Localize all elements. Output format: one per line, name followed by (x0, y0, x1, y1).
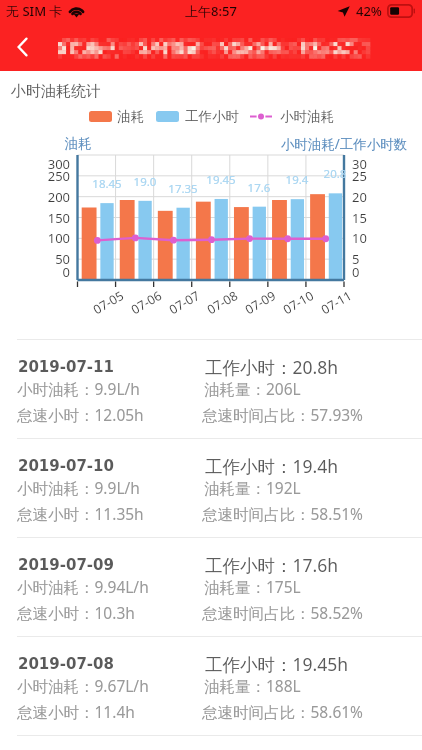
staticText: 100 (26, 229, 70, 247)
button[interactable]: 2019-07-11 (0, 340, 422, 438)
staticText: 07-09 (242, 287, 279, 318)
staticText: 怠速小时：11.35h (17, 503, 144, 524)
staticText: 17.35 (161, 181, 205, 197)
staticText: 2019-07-10 (18, 457, 114, 474)
staticText: 怠速时间占比：58.51% (202, 503, 363, 524)
staticText: 油耗量：206L (204, 378, 301, 399)
staticText: 30 (352, 155, 367, 173)
button[interactable]: 2019-07-08 (0, 637, 422, 735)
staticText: 工作小时：19.4h (205, 454, 339, 478)
staticText: 小时油耗 (280, 108, 334, 125)
staticText: 19.4 (275, 172, 319, 188)
staticText: 07-10 (280, 287, 317, 318)
staticText: 18.45 (85, 176, 129, 192)
staticText: 07-08 (204, 287, 241, 318)
staticText: 工作小时：19.45h (205, 652, 349, 676)
staticText: 油耗 (117, 108, 144, 125)
staticText: 50 (26, 250, 70, 268)
staticText: 250 (26, 167, 70, 185)
staticText: 15 (352, 209, 367, 227)
staticText: 25 (352, 167, 367, 185)
staticText: 5 (352, 250, 360, 268)
staticText: 工作小时 (185, 108, 239, 125)
staticText: 怠速小时：11.4h (17, 701, 135, 722)
staticText: 150 (26, 209, 70, 227)
staticText: 小时油耗：9.9L/h (17, 378, 140, 399)
staticText: 油耗 (38, 135, 118, 152)
staticText: 小时油耗：9.94L/h (17, 576, 149, 597)
staticText: 上午8:57 (185, 2, 237, 20)
staticText: 200 (26, 188, 70, 206)
staticText: 小时油耗：9.67L/h (17, 675, 149, 696)
button[interactable]: 2019-07-09 (0, 538, 422, 636)
staticText: 2019-07-09 (18, 556, 114, 573)
staticText: 0 (26, 263, 70, 281)
staticText: 工作小时：20.8h (205, 355, 339, 379)
staticText: 2019-07-11 (18, 358, 114, 375)
staticText: 油耗量：175L (204, 576, 301, 597)
staticText: 怠速时间占比：58.52% (202, 602, 363, 623)
staticText: 油耗量：188L (204, 675, 301, 696)
staticText: 0 (352, 263, 360, 281)
staticText: 07-07 (166, 287, 203, 318)
staticText: 17.6 (237, 180, 281, 196)
staticText: 07-05 (90, 287, 127, 318)
staticText: 小时油耗/工作小时数 (264, 135, 422, 153)
staticText: 07-06 (128, 287, 165, 318)
button[interactable]: 2019-07-10 (0, 439, 422, 537)
staticText: 42% (356, 2, 382, 20)
staticText: 小时油耗统计 (11, 82, 101, 101)
staticText: 怠速时间占比：57.93% (202, 404, 363, 425)
staticText: 10 (352, 229, 367, 247)
staticText: 19.45 (199, 172, 243, 188)
staticText: 小时油耗：9.9L/h (17, 477, 140, 498)
staticText: 07-11 (318, 287, 355, 318)
staticText: 20 (352, 188, 367, 206)
staticText: 怠速时间占比：58.61% (202, 701, 363, 722)
staticText: 20.8 (313, 166, 357, 182)
staticText: 怠速小时：10.3h (17, 602, 135, 623)
staticText: 工作小时：17.6h (205, 553, 339, 577)
staticText: 2019-07-08 (18, 655, 114, 672)
staticText: 怠速小时：12.05h (17, 404, 144, 425)
staticText: 无 SIM 卡 (6, 2, 63, 20)
staticText: 300 (26, 155, 70, 173)
staticText: 油耗量：192L (204, 477, 301, 498)
staticText: 19.0 (123, 174, 167, 190)
button[interactable]: 返回 (2, 26, 44, 68)
